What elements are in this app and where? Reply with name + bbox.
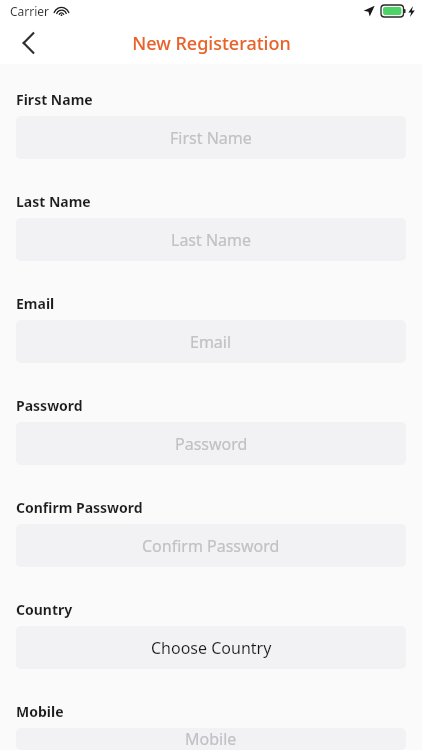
button[interactable]: Choose Country: [16, 626, 406, 669]
staticText: Password: [16, 396, 83, 415]
button[interactable]: First Name: [16, 116, 406, 159]
staticText: First Name: [170, 127, 252, 149]
staticText: Mobile: [185, 728, 237, 750]
button[interactable]: Confirm Password: [16, 524, 406, 567]
staticText: New Registeration: [132, 31, 291, 56]
button[interactable]: Email: [16, 320, 406, 363]
staticText: Carrier: [10, 3, 50, 19]
staticText: Last Name: [16, 192, 91, 211]
staticText: Choose Country: [151, 637, 272, 659]
staticText: First Name: [16, 90, 93, 109]
button[interactable]: Mobile: [16, 728, 406, 750]
staticText: Last Name: [171, 229, 252, 251]
staticText: Email: [190, 331, 232, 353]
staticText: Country: [16, 600, 73, 619]
staticText: Password: [175, 433, 248, 455]
staticText: Email: [16, 294, 55, 313]
staticText: Confirm Password: [142, 535, 280, 557]
button[interactable]: Password: [16, 422, 406, 465]
button[interactable]: Back: [6, 22, 50, 64]
staticText: Confirm Password: [16, 498, 143, 517]
button[interactable]: Last Name: [16, 218, 406, 261]
staticText: Mobile: [16, 702, 64, 721]
